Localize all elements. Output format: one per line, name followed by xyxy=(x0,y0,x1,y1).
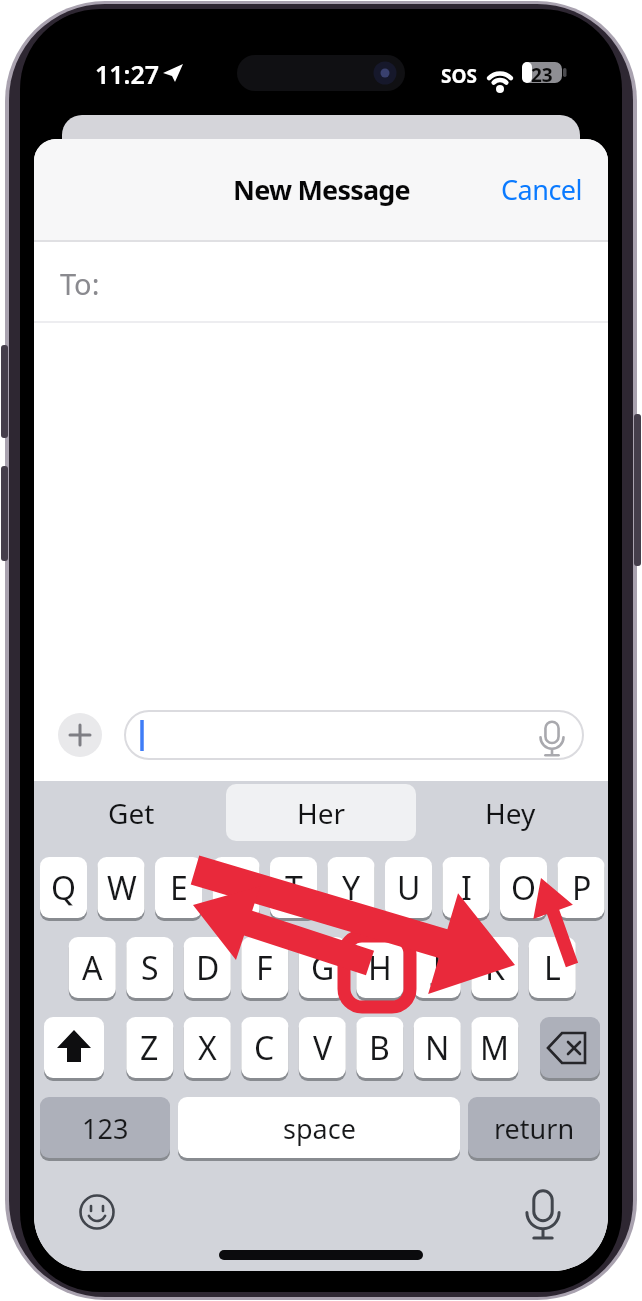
staticText: P xyxy=(572,866,592,910)
button[interactable]: U xyxy=(385,857,432,919)
staticText: W xyxy=(107,866,137,910)
staticText: To: xyxy=(60,264,100,303)
button[interactable]: Z xyxy=(126,1017,173,1079)
button[interactable]: A xyxy=(69,937,116,999)
staticText: J xyxy=(433,946,442,990)
button[interactable]: Q xyxy=(40,857,87,919)
staticText: R xyxy=(227,866,247,910)
staticText: return xyxy=(494,1110,575,1147)
staticText: Cancel xyxy=(501,171,583,208)
button[interactable]: M xyxy=(471,1017,518,1079)
staticText: 23 xyxy=(531,62,553,83)
staticText: K xyxy=(485,946,505,990)
button[interactable]: D xyxy=(184,937,231,999)
staticText: B xyxy=(369,1026,390,1070)
button[interactable]: J xyxy=(414,937,461,999)
button[interactable]: Get xyxy=(74,784,188,841)
staticText: Z xyxy=(140,1026,159,1070)
staticText: S xyxy=(141,946,159,990)
button[interactable]: H xyxy=(356,937,403,999)
staticText: V xyxy=(313,1026,333,1070)
staticText: O xyxy=(511,866,536,910)
staticText: 123 xyxy=(82,1110,129,1147)
staticText: D xyxy=(196,946,220,990)
button[interactable]: 123 xyxy=(40,1097,170,1159)
button[interactable]: To: xyxy=(34,242,608,321)
button[interactable]: space xyxy=(178,1097,460,1159)
staticText: C xyxy=(254,1026,275,1070)
staticText: New Message xyxy=(233,171,410,208)
button[interactable]: B xyxy=(356,1017,403,1079)
staticText: A xyxy=(82,946,103,990)
button[interactable]: C xyxy=(241,1017,288,1079)
button[interactable]: N xyxy=(414,1017,461,1079)
staticText: I xyxy=(461,866,472,910)
staticText: G xyxy=(311,946,335,990)
staticText: SOS xyxy=(441,63,477,89)
staticText: Y xyxy=(342,866,361,910)
staticText: U xyxy=(397,866,421,910)
staticText: T xyxy=(285,866,303,910)
button[interactable]: I xyxy=(443,857,490,919)
staticText: space xyxy=(283,1110,356,1147)
staticText: Q xyxy=(51,866,76,910)
button[interactable]: R xyxy=(213,857,260,919)
button[interactable]: return xyxy=(468,1097,600,1159)
staticText: Get xyxy=(108,794,155,832)
button[interactable]: Y xyxy=(328,857,375,919)
button[interactable]: V xyxy=(299,1017,346,1079)
staticText: H xyxy=(368,946,392,990)
button[interactable]: P xyxy=(558,857,605,919)
staticText: Her xyxy=(297,794,346,832)
button[interactable]: T xyxy=(270,857,317,919)
staticText: N xyxy=(425,1026,450,1070)
staticText: F xyxy=(256,946,273,990)
staticText: M xyxy=(480,1026,510,1070)
button[interactable]: Hey xyxy=(453,784,567,841)
button[interactable]: K xyxy=(471,937,518,999)
button[interactable]: L xyxy=(529,937,576,999)
button[interactable]: G xyxy=(299,937,346,999)
button[interactable]: S xyxy=(126,937,173,999)
button[interactable] xyxy=(226,784,416,841)
button[interactable]: Cancel xyxy=(414,139,583,240)
staticText: X xyxy=(198,1026,217,1070)
staticText: 11:27 xyxy=(95,57,160,91)
button[interactable]: F xyxy=(241,937,288,999)
staticText: Hey xyxy=(485,794,536,832)
button[interactable]: W xyxy=(98,857,145,919)
button[interactable]: X xyxy=(184,1017,231,1079)
staticText: L xyxy=(544,946,561,990)
button[interactable]: E xyxy=(155,857,202,919)
button[interactable]: O xyxy=(500,857,547,919)
staticText: E xyxy=(170,866,188,910)
